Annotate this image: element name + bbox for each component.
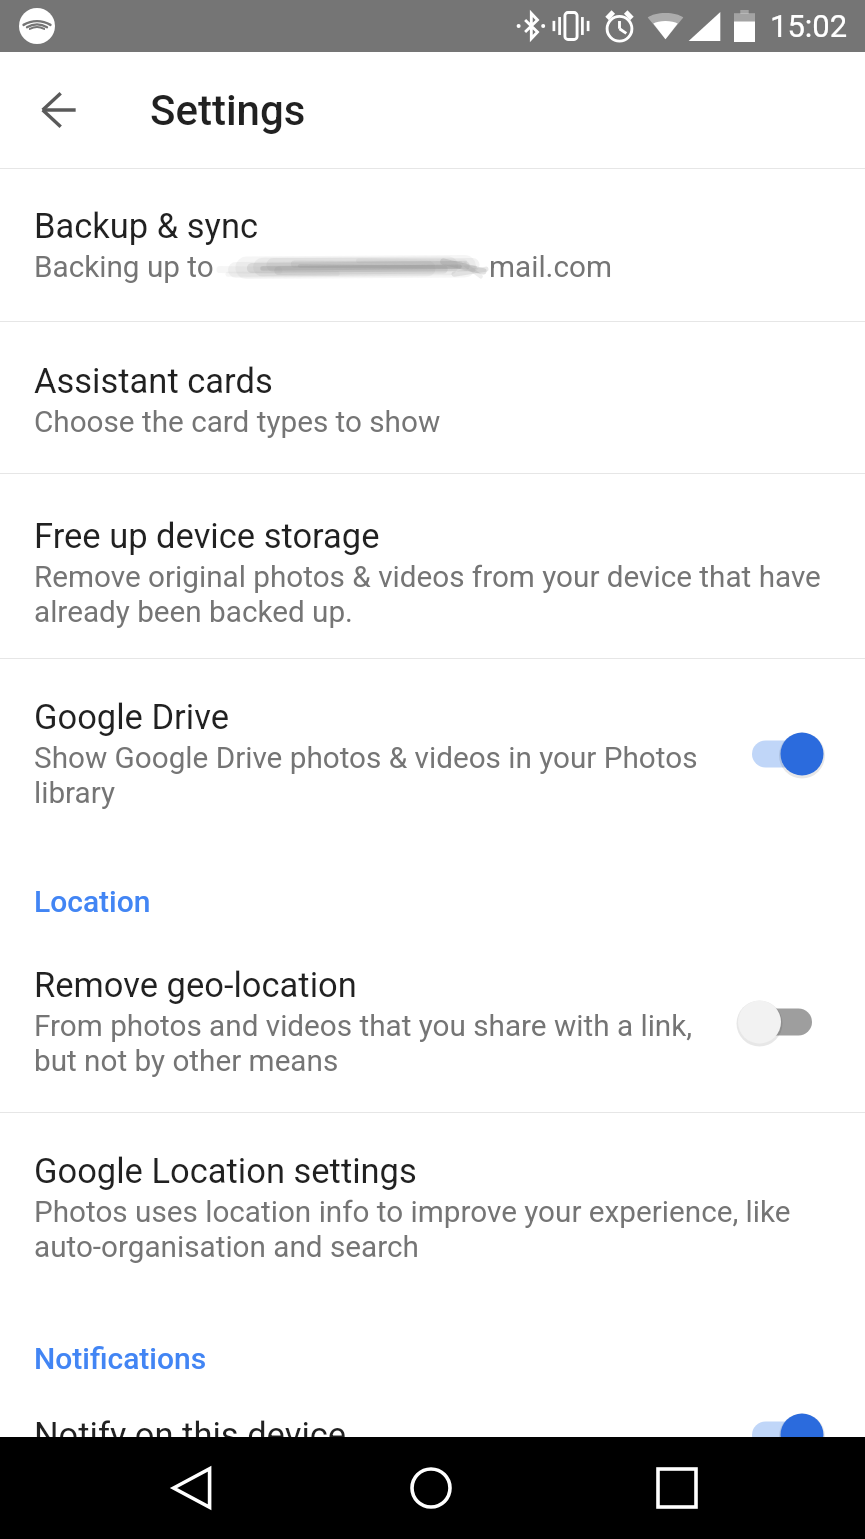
- staticText: Google Location settings: [34, 1151, 417, 1191]
- staticText: Show Google Drive photos & videos in you…: [34, 740, 698, 775]
- button[interactable]: Toggle on: [738, 730, 824, 778]
- staticText: 15:02: [770, 8, 848, 44]
- button[interactable]: Assistant cards: [0, 322, 865, 473]
- button[interactable]: Home: [388, 1445, 474, 1531]
- staticText: Assistant cards: [34, 361, 273, 401]
- staticText: library: [34, 775, 116, 810]
- button[interactable]: Notify on this device: [0, 1399, 865, 1489]
- staticText: Free up device storage: [34, 516, 380, 556]
- staticText: Location: [34, 884, 151, 919]
- button[interactable]: Remove geo-location: [0, 942, 865, 1112]
- staticText: Notifications: [34, 1341, 207, 1376]
- staticText: Notify on this device: [34, 1415, 347, 1455]
- button[interactable]: Google Drive: [0, 659, 865, 837]
- button[interactable]: Google Location settings: [0, 1113, 865, 1297]
- staticText: Remove geo-location: [34, 965, 357, 1005]
- staticText: From photos and videos that you share wi…: [34, 1008, 693, 1043]
- button[interactable]: Backup & sync: [0, 169, 865, 321]
- button[interactable]: Recents: [634, 1445, 720, 1531]
- staticText: already been backed up.: [34, 594, 353, 629]
- button[interactable]: Back: [149, 1445, 235, 1531]
- staticText: Settings: [150, 86, 306, 135]
- staticText: Photos uses location info to improve you…: [34, 1194, 791, 1229]
- staticText: Google Drive: [34, 697, 229, 737]
- staticText: Backing up to: [34, 249, 214, 284]
- staticText: but not by other means: [34, 1043, 339, 1078]
- staticText: auto-organisation and search: [34, 1229, 419, 1264]
- button[interactable]: Toggle off: [738, 998, 824, 1046]
- staticText: mail.com: [489, 249, 612, 284]
- button[interactable]: Toggle on: [738, 1411, 824, 1459]
- button[interactable]: Free up device storage: [0, 474, 865, 658]
- staticText: Backup & sync: [34, 206, 259, 246]
- button[interactable]: Back: [11, 62, 107, 158]
- staticText: Remove original photos & videos from you…: [34, 559, 821, 594]
- staticText: Choose the card types to show: [34, 404, 441, 439]
